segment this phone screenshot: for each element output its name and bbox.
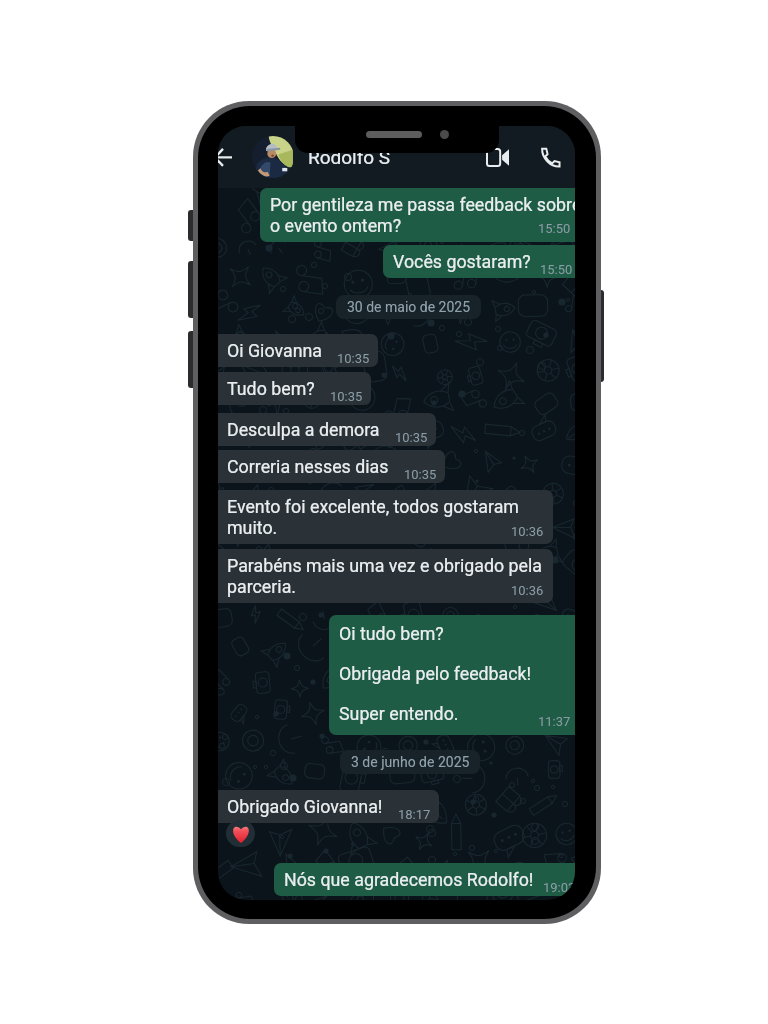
staticText: Tudo bem? xyxy=(227,378,315,399)
staticText: Rodolfo S xyxy=(308,146,391,168)
staticText: Super entendo. xyxy=(339,703,459,724)
staticText: 10:35 xyxy=(395,430,428,445)
staticText: 3 de junho de 2025 xyxy=(351,754,470,770)
button[interactable]: Parabéns mais uma vez e obrigado pela xyxy=(218,549,553,603)
staticText: Nós que agradecemos Rodolfo! xyxy=(284,869,534,890)
staticText: Desculpa a demora xyxy=(227,419,380,440)
staticText: 10:36 xyxy=(511,524,544,539)
button[interactable]: 30 de maio de 2025 xyxy=(336,295,481,319)
button[interactable]: Evento foi excelente, todos gostaram xyxy=(218,490,553,544)
staticText: Evento foi excelente, todos gostaram xyxy=(227,496,519,517)
staticText: 19:03 xyxy=(543,880,575,895)
button[interactable]: Voice call xyxy=(540,147,561,168)
staticText: Parabéns mais uma vez e obrigado pela xyxy=(227,555,543,576)
staticText: 10:36 xyxy=(511,583,544,598)
button[interactable]: Back xyxy=(218,144,238,171)
staticText: Por gentileza me passa feedback sobre xyxy=(270,194,575,215)
staticText: Obrigado Giovanna! xyxy=(227,796,383,817)
button[interactable]: Vocês gostaram? xyxy=(383,245,575,278)
staticText: muito. xyxy=(227,517,278,538)
button[interactable]: Tudo bem? xyxy=(218,372,371,405)
button[interactable]: Contact photo xyxy=(252,136,294,178)
staticText: o evento ontem? xyxy=(270,215,402,236)
staticText: 10:35 xyxy=(330,389,363,404)
staticText: 10:35 xyxy=(404,467,437,482)
staticText: Obrigada pelo feedback! xyxy=(339,663,532,684)
button[interactable]: Desculpa a demora xyxy=(218,413,436,446)
staticText: 18:17 xyxy=(398,807,431,822)
button[interactable]: Correria nesses dias xyxy=(218,450,445,483)
button[interactable]: Por gentileza me passa feedback sobre xyxy=(260,188,575,242)
button[interactable]: Oi Giovanna xyxy=(218,334,378,367)
staticText: 15:50 xyxy=(540,262,573,277)
button[interactable]: Heart reaction xyxy=(226,820,255,847)
button[interactable]: Oi tudo bem? xyxy=(329,615,575,735)
staticText: Vocês gostaram? xyxy=(393,251,531,272)
staticText: Oi Giovanna xyxy=(227,340,322,361)
staticText: parceria. xyxy=(227,576,297,597)
staticText: Correria nesses dias xyxy=(227,456,389,477)
button[interactable]: Video call xyxy=(486,148,509,167)
staticText: 15:50 xyxy=(538,221,571,236)
button[interactable]: Nós que agradecemos Rodolfo! xyxy=(274,863,575,896)
button[interactable]: Obrigado Giovanna! xyxy=(218,790,439,823)
staticText: 10:35 xyxy=(337,351,370,366)
staticText: Oi tudo bem? xyxy=(339,623,444,644)
staticText: 30 de maio de 2025 xyxy=(347,299,471,315)
staticText: 11:37 xyxy=(538,714,571,729)
button[interactable]: 3 de junho de 2025 xyxy=(340,750,480,774)
